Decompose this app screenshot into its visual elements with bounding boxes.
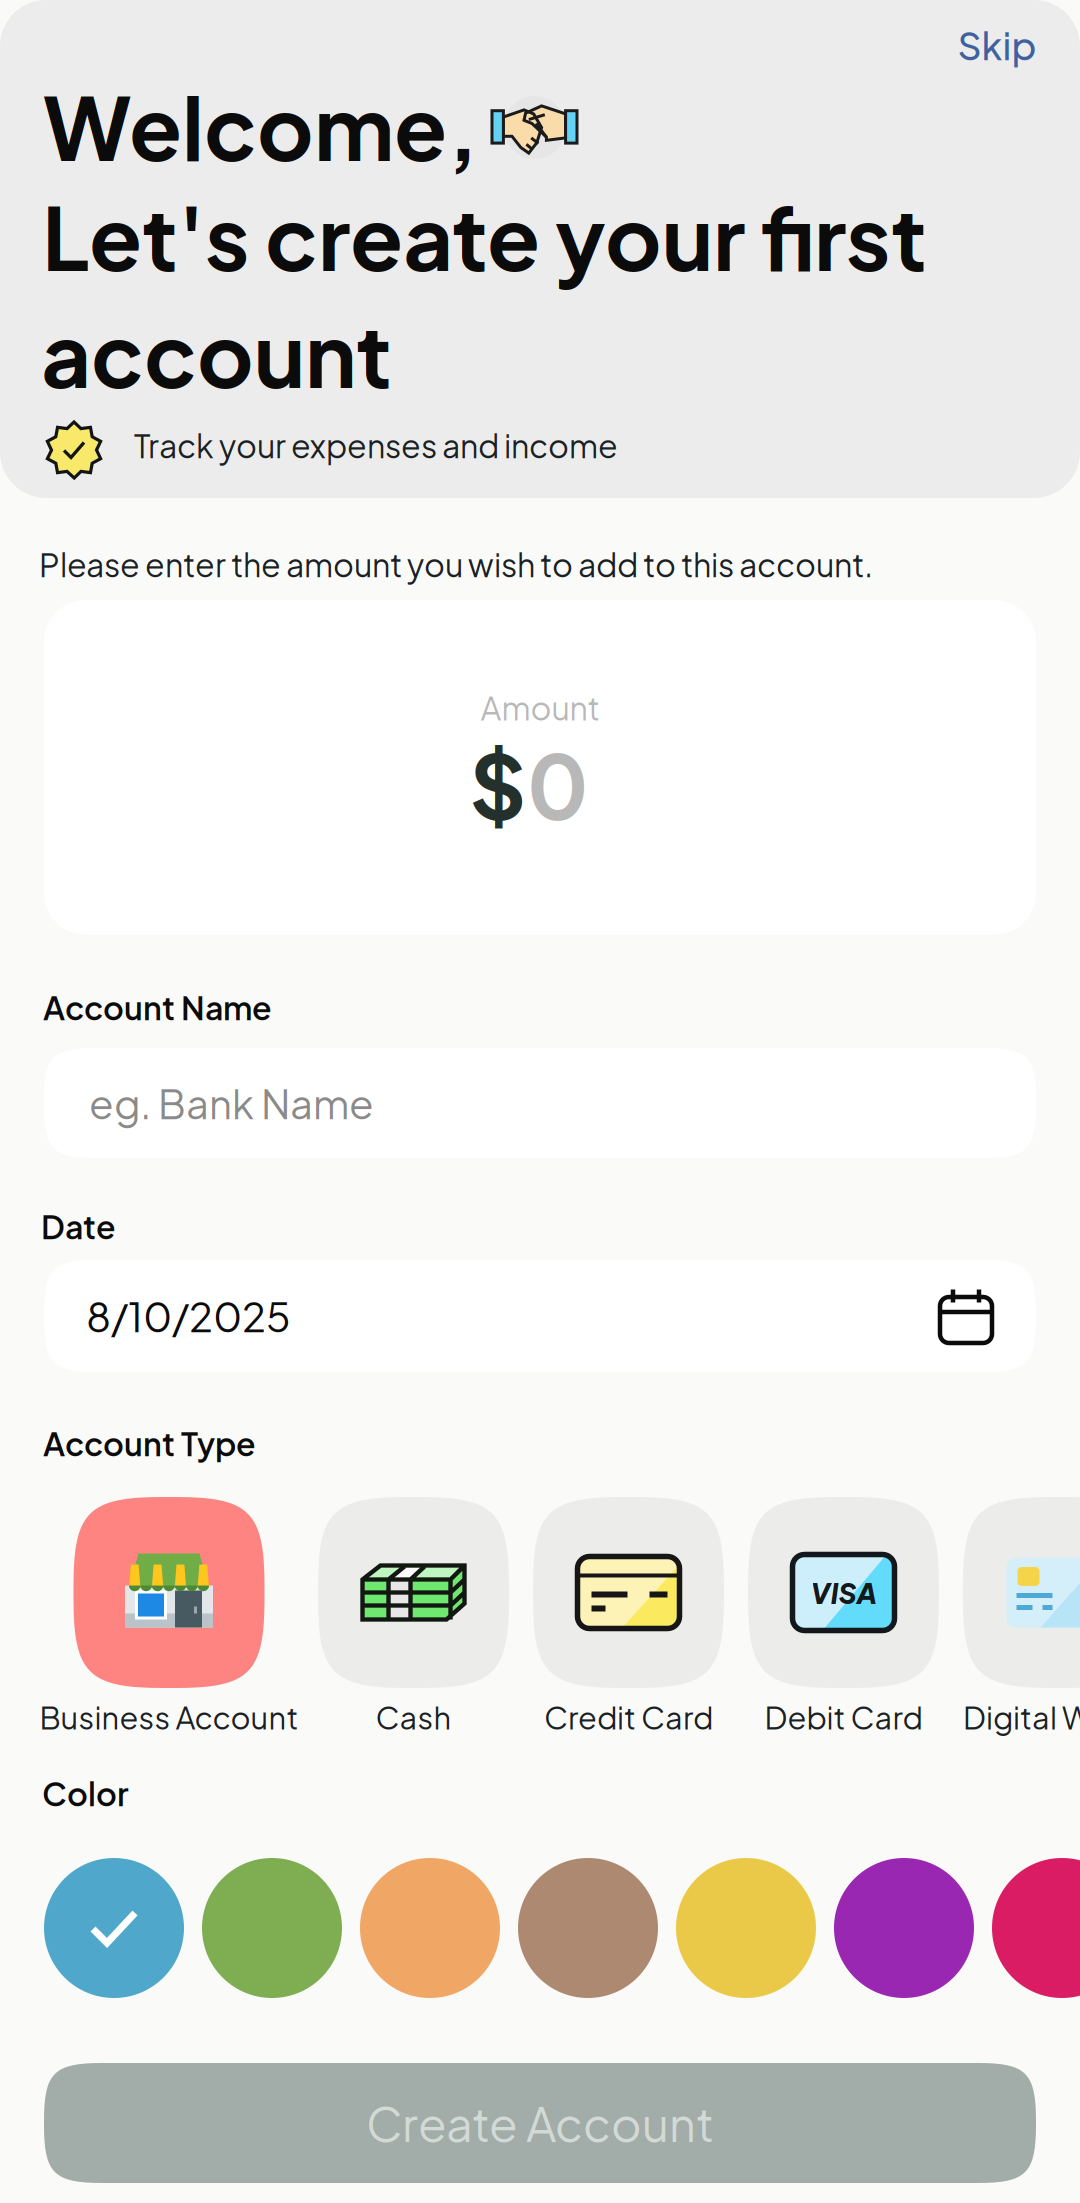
staticText: 0 (526, 729, 588, 840)
staticText: Date (41, 1206, 116, 1246)
staticText: $ (469, 729, 526, 840)
staticText: VISA (810, 1575, 876, 1610)
button[interactable]: Colour option (834, 1858, 974, 1998)
button[interactable]: Selected colour (44, 1858, 184, 1998)
button[interactable]: Create Account (44, 2063, 1036, 2183)
button[interactable]: Colour option (202, 1858, 342, 1998)
staticText: Color (42, 1773, 129, 1813)
staticText: Track your expenses and income (134, 425, 618, 465)
button[interactable]: Cash (318, 1497, 509, 1733)
staticText: Welcome, (43, 71, 478, 180)
button[interactable]: Colour option (992, 1858, 1080, 1998)
staticText: 8/10/2025 (86, 1291, 291, 1341)
button[interactable]: Skip (942, 12, 1052, 78)
staticText: account (41, 298, 392, 407)
button[interactable]: Colour option (360, 1858, 500, 1998)
staticText: Please enter the amount you wish to add … (39, 544, 873, 584)
staticText: eg. Bank Name (89, 1078, 374, 1128)
staticText: Skip (957, 21, 1036, 68)
staticText: Business Account (39, 1698, 298, 1736)
button[interactable]: Colour option (518, 1858, 658, 1998)
staticText: Account Type (43, 1423, 256, 1463)
button[interactable]: Digital Wallet (963, 1497, 1080, 1733)
staticText: Create Account (366, 2094, 714, 2152)
button[interactable]: Colour option (676, 1858, 816, 1998)
staticText: Cash (375, 1698, 451, 1736)
button[interactable]: Credit Card (533, 1497, 724, 1733)
staticText: Let's create your first (42, 181, 927, 290)
staticText: Digital Wallet (963, 1698, 1080, 1736)
staticText: Credit Card (544, 1698, 713, 1736)
staticText: Debit Card (764, 1698, 922, 1736)
button[interactable]: Business Account (44, 1497, 294, 1733)
staticText: Account Name (43, 987, 272, 1027)
staticText: Amount (480, 687, 599, 728)
button[interactable]: VISA (748, 1497, 939, 1733)
